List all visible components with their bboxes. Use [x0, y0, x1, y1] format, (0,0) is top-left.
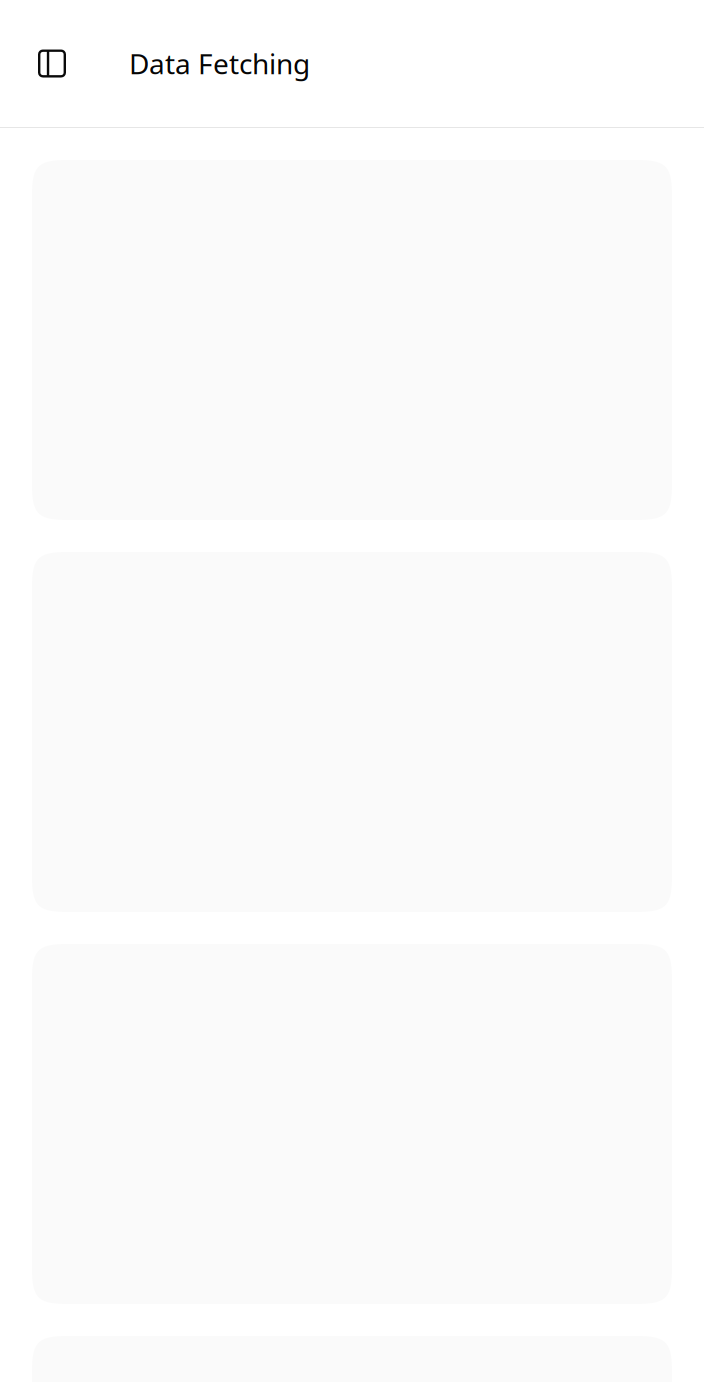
staticText: Data Fetching [129, 45, 310, 82]
button[interactable]: Toggle Sidebar [30, 41, 74, 85]
